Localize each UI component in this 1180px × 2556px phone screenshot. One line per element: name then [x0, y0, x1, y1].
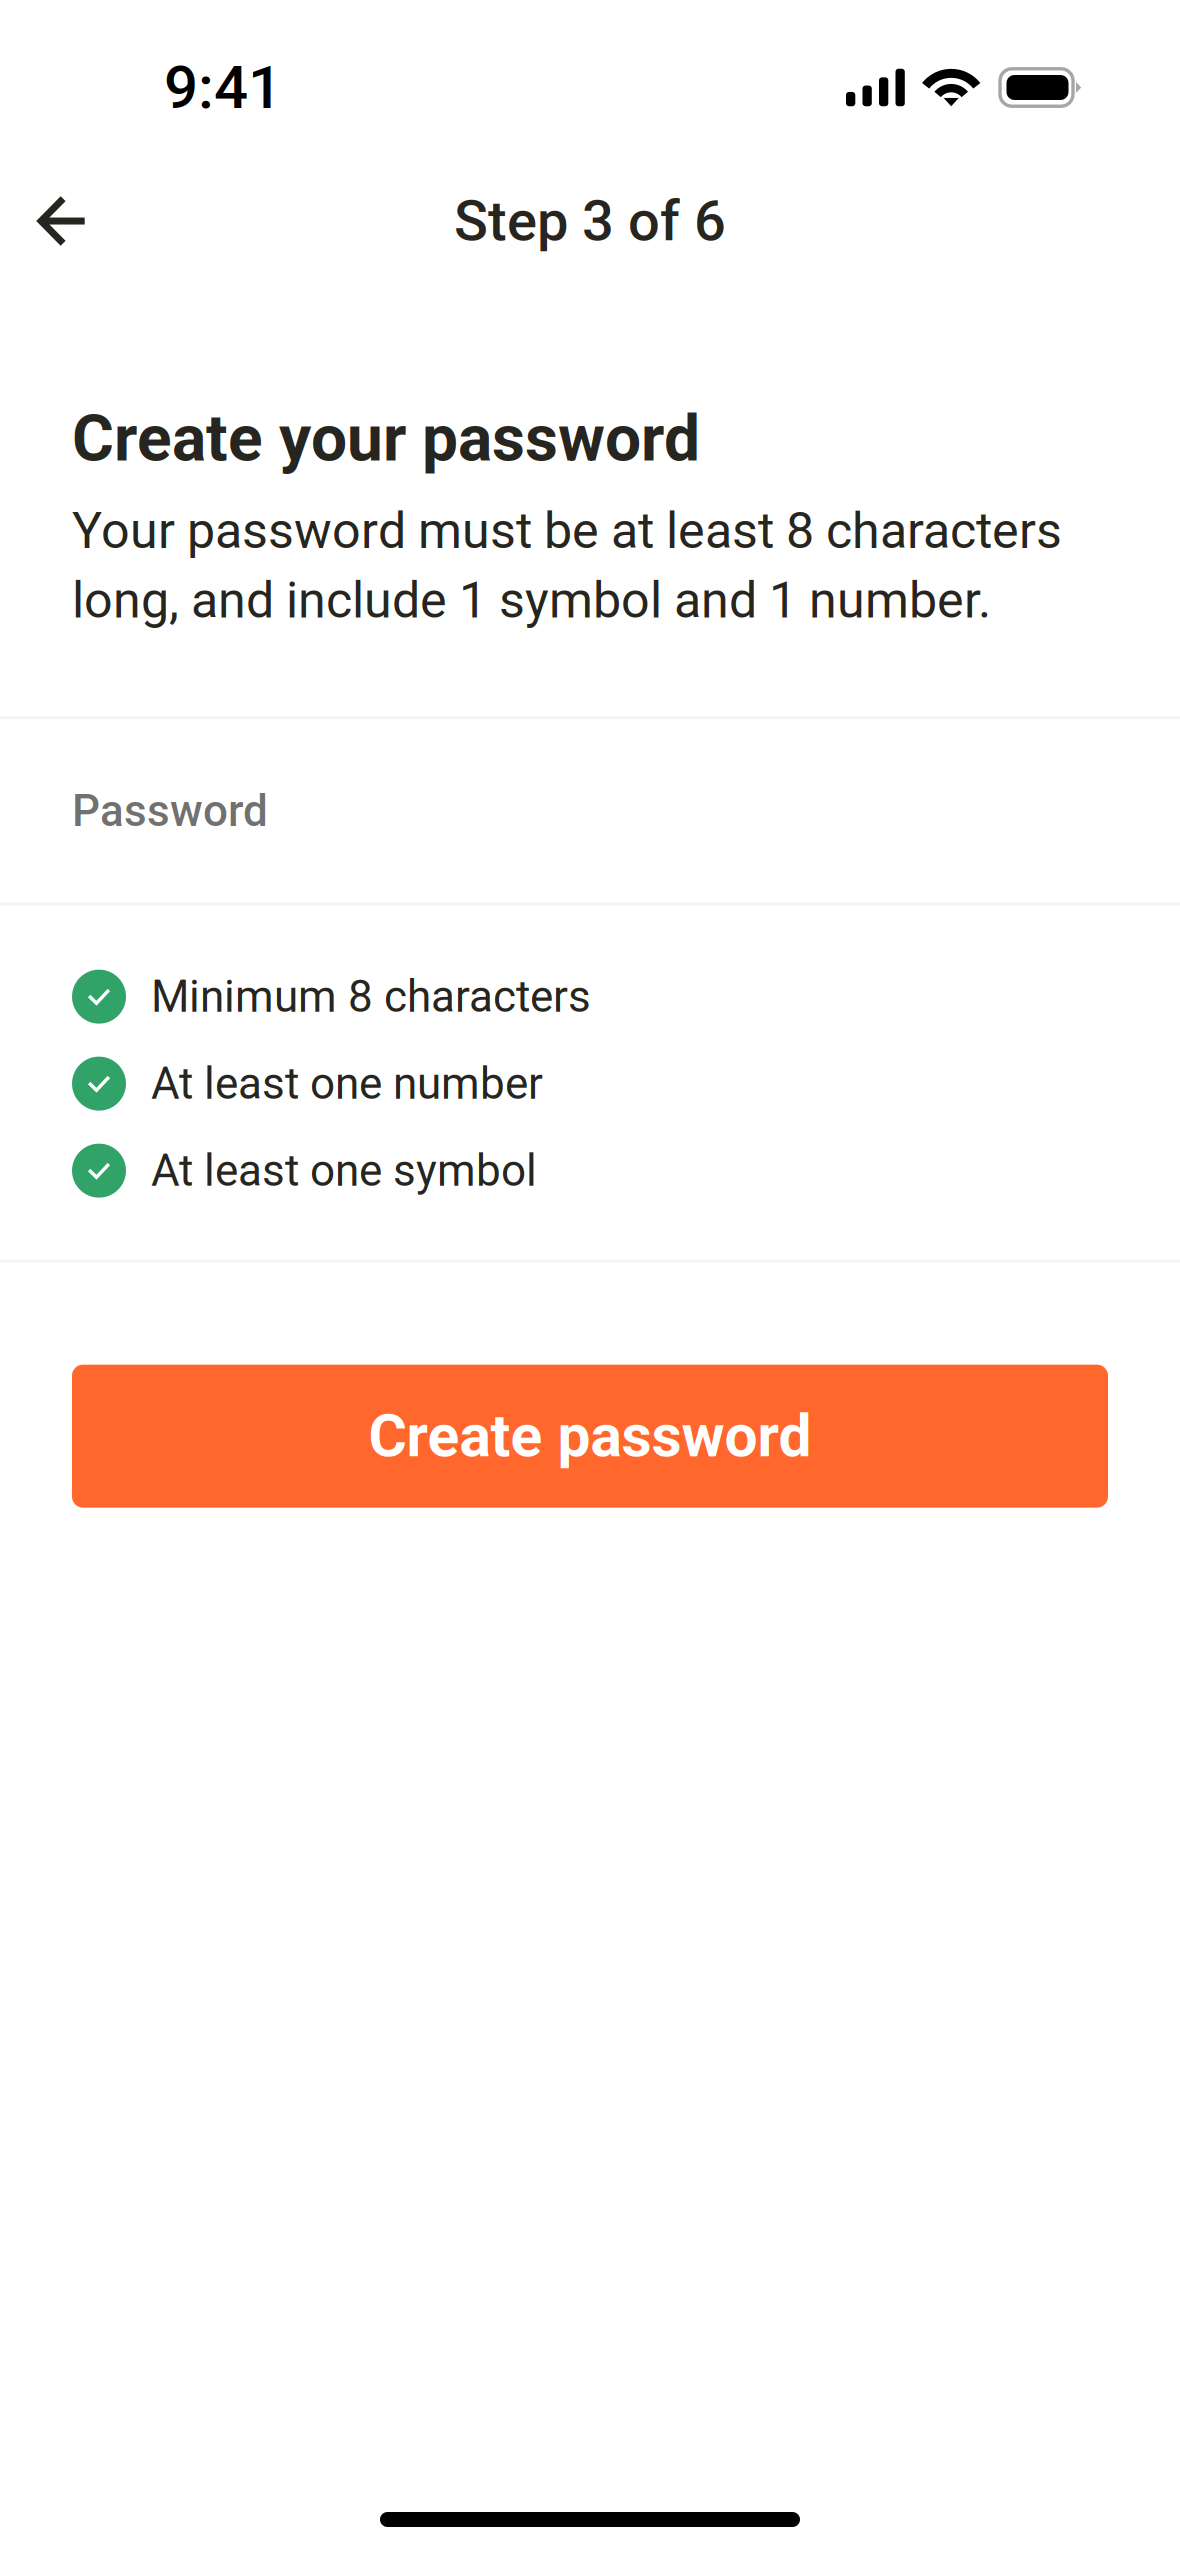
staticText: Password [72, 785, 268, 837]
button[interactable]: Back [17, 175, 109, 267]
button[interactable]: Password [0, 719, 1180, 903]
staticText: Create your password [72, 401, 700, 476]
staticText: Create password [368, 1402, 811, 1471]
staticText: At least one number [151, 1058, 543, 1109]
staticText: 9:41 [164, 52, 282, 123]
button[interactable]: Create password [72, 1365, 1108, 1508]
staticText: Minimum 8 characters [151, 971, 591, 1022]
staticText: At least one symbol [151, 1145, 537, 1196]
staticText: Your password must be at least 8 charact… [72, 496, 1062, 635]
staticText: Step 3 of 6 [454, 188, 726, 254]
